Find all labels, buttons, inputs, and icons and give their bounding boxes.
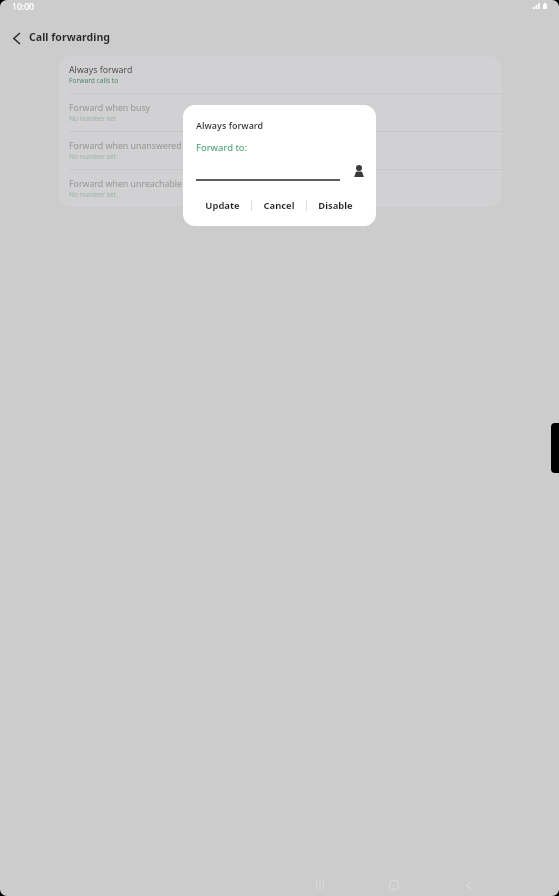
staticText: Cancel — [263, 199, 295, 212]
staticText: Forward when unreachable — [69, 178, 183, 190]
staticText: 10:00 — [12, 1, 34, 13]
staticText: No number set — [69, 114, 116, 123]
button[interactable]: Forward when unanswered — [58, 132, 502, 169]
staticText: Forward when busy — [69, 102, 151, 114]
staticText: Always forward — [69, 64, 133, 76]
button[interactable]: Update — [194, 192, 251, 218]
staticText: Disable — [318, 199, 353, 212]
staticText: No number set — [69, 190, 116, 199]
staticText: Always forward — [196, 119, 264, 131]
button[interactable]: Always forward — [58, 56, 502, 93]
staticText: Update — [205, 199, 240, 212]
button[interactable]: Pick contact — [350, 162, 368, 180]
staticText: No number set — [69, 152, 116, 161]
staticText: Forward when unanswered — [69, 140, 182, 152]
button[interactable]: Cancel — [252, 192, 306, 218]
button[interactable]: Disable — [307, 192, 364, 218]
button[interactable]: Forward when unreachable — [58, 170, 502, 207]
button[interactable]: Forward when busy — [58, 94, 502, 131]
staticText: Call forwarding — [29, 30, 111, 44]
button[interactable]: Edge panel handle — [551, 423, 559, 473]
button[interactable]: Navigate up — [0, 25, 33, 51]
staticText: Forward calls to — [69, 76, 119, 85]
staticText: Forward to: — [196, 141, 248, 154]
